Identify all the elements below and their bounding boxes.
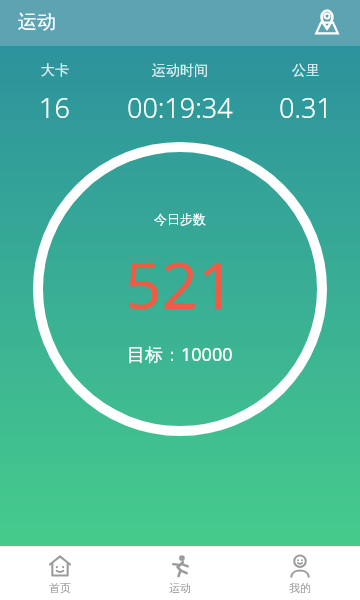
button[interactable]: Home [0, 547, 120, 600]
button[interactable]: Exercise [120, 547, 240, 600]
button[interactable]: 运动时间 [109, 46, 251, 142]
staticText: 运动时间 [152, 62, 208, 80]
staticText: 公里 [292, 62, 320, 80]
staticText: 运动 [18, 10, 56, 34]
staticText: 521 [125, 241, 235, 328]
button[interactable]: 公里 [251, 46, 360, 142]
button[interactable]: Map location [306, 1, 348, 43]
staticText: 运动 [169, 581, 191, 595]
staticText: 00:19:34 [127, 89, 233, 126]
staticText: 0.31 [279, 89, 332, 126]
staticText: 我的 [289, 581, 311, 595]
button[interactable]: 大卡 [0, 46, 109, 142]
staticText: 16 [39, 89, 70, 126]
button[interactable]: Profile [240, 547, 360, 600]
staticText: 目标：10000 [127, 342, 233, 367]
staticText: 首页 [49, 581, 71, 595]
staticText: 大卡 [41, 62, 69, 80]
staticText: 今日步数 [154, 211, 206, 227]
